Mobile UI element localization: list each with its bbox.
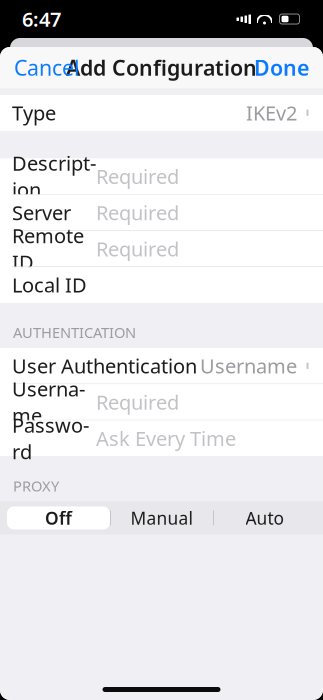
- staticText: Local ID: [12, 272, 87, 298]
- staticText: Required: [96, 199, 179, 226]
- staticText: Add Configuration: [66, 53, 257, 82]
- staticText: Server: [12, 199, 71, 226]
- button[interactable]: Manual: [110, 506, 213, 529]
- button[interactable]: Off: [7, 506, 110, 529]
- staticText: Manual: [130, 506, 192, 529]
- staticText: AUTHENTICATION: [13, 323, 136, 342]
- button[interactable]: Username: [0, 384, 323, 420]
- staticText: Username: [12, 375, 85, 429]
- button[interactable]: Server: [0, 195, 323, 230]
- staticText: Auto: [245, 506, 283, 529]
- button[interactable]: User Authentication: [0, 348, 323, 384]
- staticText: Done: [254, 53, 309, 82]
- staticText: Password: [12, 412, 89, 465]
- button[interactable]: Description: [0, 158, 323, 194]
- button[interactable]: Cancel: [0, 43, 94, 92]
- staticText: Description: [12, 150, 96, 203]
- staticText: Off: [45, 506, 72, 529]
- button[interactable]: Local ID: [0, 267, 323, 303]
- button[interactable]: Done: [240, 43, 323, 92]
- staticText: Type: [12, 99, 56, 126]
- staticText: Ask Every Time: [96, 425, 236, 451]
- staticText: Username: [200, 352, 297, 379]
- staticText: IKEv2: [246, 99, 297, 126]
- staticText: Cancel: [14, 53, 80, 82]
- staticText: 6:47: [22, 6, 61, 32]
- button[interactable]: Auto: [213, 506, 316, 529]
- staticText: User Authentication: [12, 352, 197, 379]
- button[interactable]: Password: [0, 420, 323, 456]
- button[interactable]: Remote ID: [0, 231, 323, 266]
- staticText: Remote ID: [12, 222, 84, 275]
- staticText: Required: [96, 235, 179, 262]
- staticText: Required: [96, 389, 179, 415]
- staticText: PROXY: [13, 476, 59, 495]
- button[interactable]: Type: [0, 95, 323, 130]
- staticText: Required: [96, 163, 179, 190]
